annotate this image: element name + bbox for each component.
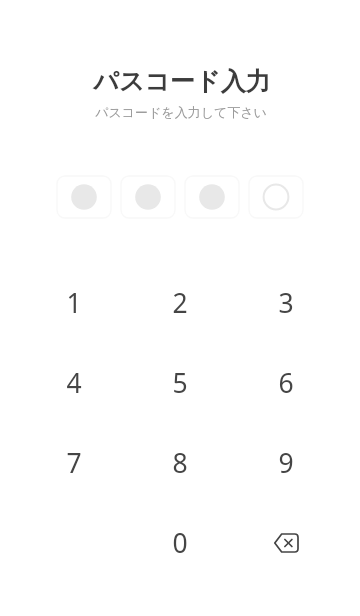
button[interactable]: 2	[127, 263, 233, 343]
button[interactable]: Backspace	[233, 503, 339, 583]
staticText: 7	[66, 445, 82, 481]
staticText: 1	[66, 285, 82, 321]
staticText: 8	[172, 445, 188, 481]
staticText: 2	[172, 285, 188, 321]
staticText: 5	[172, 365, 188, 401]
button[interactable]: 5	[127, 343, 233, 423]
staticText: 6	[278, 365, 294, 401]
staticText: 0	[172, 525, 188, 561]
button[interactable]: 9	[233, 423, 339, 503]
button[interactable]: 0	[127, 503, 233, 583]
button[interactable]: 6	[233, 343, 339, 423]
staticText: パスコードを入力して下さい	[1, 104, 360, 120]
staticText: パスコード入力	[2, 66, 360, 97]
button[interactable]: 1	[21, 263, 127, 343]
staticText: 9	[278, 445, 294, 481]
staticText: 3	[278, 285, 294, 321]
staticText: 4	[66, 365, 82, 401]
button[interactable]: 3	[233, 263, 339, 343]
button[interactable]: 4	[21, 343, 127, 423]
button[interactable]: 8	[127, 423, 233, 503]
button[interactable]: 7	[21, 423, 127, 503]
